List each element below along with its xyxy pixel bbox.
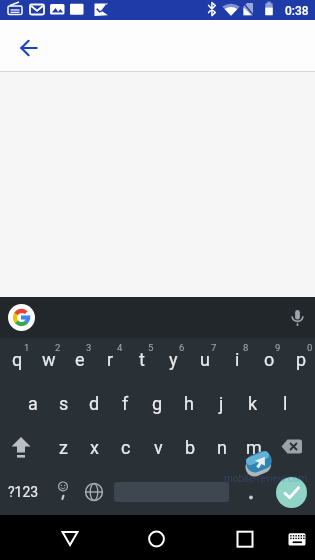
button[interactable]: m	[236, 426, 268, 470]
button[interactable]: w	[31, 338, 62, 382]
button[interactable]: n	[204, 426, 236, 470]
staticText: r	[107, 349, 114, 370]
staticText: l	[283, 393, 288, 414]
staticText: i	[235, 349, 240, 370]
staticText: o	[264, 349, 275, 370]
button[interactable]: y	[155, 338, 187, 382]
button[interactable]: v	[140, 426, 172, 470]
staticText: t	[139, 349, 145, 370]
staticText: q	[12, 349, 23, 370]
button[interactable]: s	[46, 382, 77, 426]
staticText: j	[219, 393, 224, 414]
staticText: 1	[24, 342, 30, 353]
staticText: f	[122, 393, 129, 414]
staticText: w	[42, 349, 56, 370]
button[interactable]: g	[139, 382, 171, 426]
staticText: 3	[86, 342, 92, 353]
staticText: s	[59, 393, 69, 414]
staticText: h	[184, 393, 194, 414]
staticText: 6	[179, 342, 185, 353]
button[interactable]: b	[172, 426, 204, 470]
button[interactable]	[225, 518, 265, 558]
button[interactable]: z	[46, 426, 77, 470]
staticText: a	[28, 393, 38, 414]
button[interactable]	[268, 426, 315, 470]
staticText: 9	[275, 342, 281, 353]
button[interactable]	[9, 26, 49, 66]
button[interactable]: a	[15, 382, 46, 426]
button[interactable]: u	[187, 338, 219, 382]
button[interactable]: h	[171, 382, 203, 426]
staticText: b	[185, 437, 196, 458]
button[interactable]	[137, 518, 177, 558]
staticText: g	[152, 393, 163, 414]
button[interactable]: q	[0, 338, 31, 382]
button[interactable]	[274, 520, 310, 556]
staticText: y	[169, 349, 178, 370]
staticText: 8	[243, 342, 249, 353]
staticText: x	[90, 437, 99, 458]
staticText: 0:38	[285, 4, 309, 18]
staticText: k	[248, 393, 258, 414]
button[interactable]: o	[251, 338, 283, 382]
button[interactable]: l	[267, 382, 299, 426]
staticText: d	[89, 393, 100, 414]
staticText: u	[200, 349, 210, 370]
button[interactable]	[268, 470, 315, 514]
button[interactable]: j	[203, 382, 235, 426]
button[interactable]: d	[77, 382, 108, 426]
staticText: c	[121, 437, 131, 458]
staticText: 5	[148, 342, 154, 353]
staticText: 0	[307, 342, 313, 353]
button[interactable]: c	[108, 426, 140, 470]
staticText: mobile-review.com	[224, 473, 308, 485]
button[interactable]: e	[62, 338, 93, 382]
staticText: 4	[117, 342, 123, 353]
button[interactable]: ?123	[0, 470, 46, 514]
staticText: p	[296, 349, 307, 370]
staticText: ?123	[8, 484, 39, 500]
staticText: 7	[211, 342, 217, 353]
staticText: e	[75, 349, 85, 370]
button[interactable]	[236, 470, 268, 514]
button[interactable]	[0, 426, 46, 470]
button[interactable]: x	[77, 426, 108, 470]
button[interactable]: k	[235, 382, 267, 426]
button[interactable]	[8, 304, 35, 331]
staticText: 2	[55, 342, 61, 353]
button[interactable]: i	[219, 338, 251, 382]
staticText: n	[217, 437, 227, 458]
button[interactable]: r	[93, 338, 124, 382]
staticText: m	[246, 437, 262, 458]
button[interactable]	[50, 518, 90, 558]
button[interactable]	[279, 297, 315, 338]
staticText: z	[59, 437, 68, 458]
staticText: v	[154, 437, 163, 458]
button[interactable]	[78, 470, 110, 514]
button[interactable]: f	[108, 382, 139, 426]
button[interactable]: t	[124, 338, 155, 382]
button[interactable]	[110, 470, 236, 514]
button[interactable]	[46, 470, 78, 514]
button[interactable]: p	[283, 338, 315, 382]
